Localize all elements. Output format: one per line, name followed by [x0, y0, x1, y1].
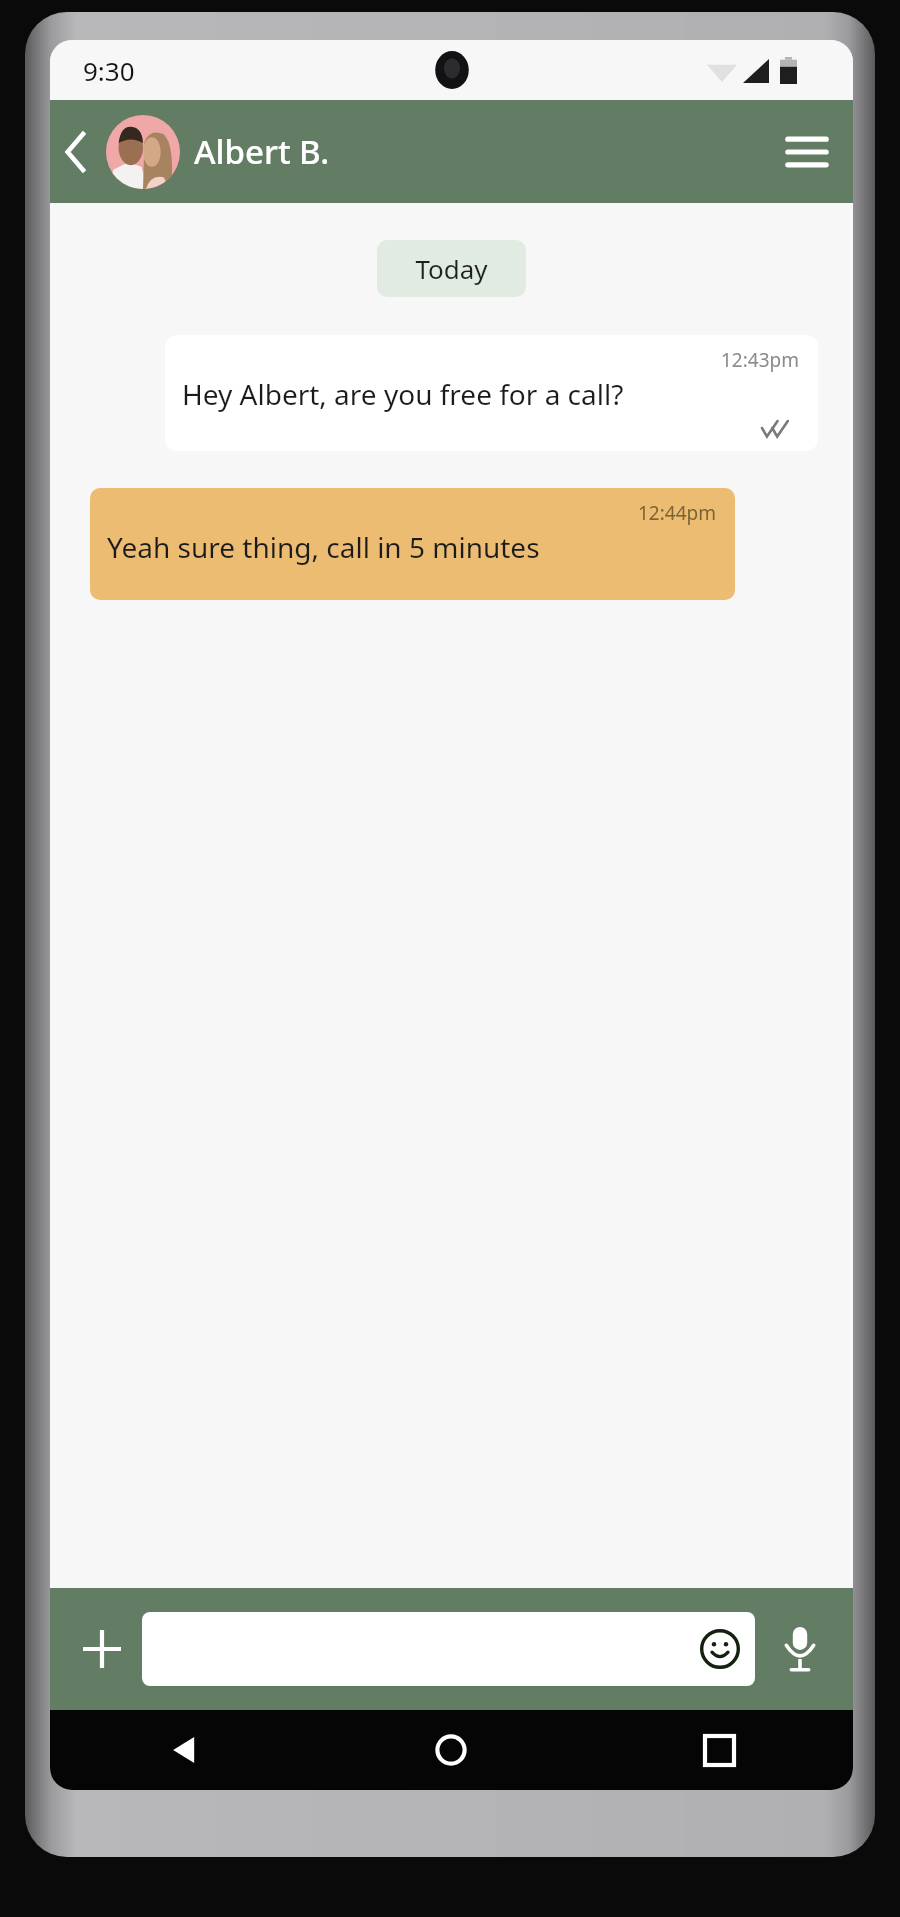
button[interactable]: Today: [377, 240, 526, 297]
button[interactable]: Home: [317, 1710, 585, 1790]
staticText: 9:30: [83, 53, 135, 88]
staticText: Hey Albert, are you free for a call?: [182, 375, 624, 413]
button[interactable]: 12:44pm: [90, 488, 735, 600]
staticText: 12:43pm: [721, 347, 800, 373]
button[interactable]: Emoji: [691, 1620, 749, 1678]
button[interactable]: Back: [50, 1710, 317, 1790]
button[interactable]: Voice message: [769, 1618, 831, 1680]
button[interactable]: Emoji: [142, 1612, 755, 1686]
staticText: Yeah sure thing, call in 5 minutes: [107, 528, 540, 566]
button[interactable]: Albert B.: [194, 129, 330, 174]
staticText: 12:44pm: [638, 500, 717, 526]
staticText: Today: [415, 251, 488, 286]
button[interactable]: Attach: [74, 1621, 130, 1677]
button[interactable]: Recent apps: [585, 1710, 853, 1790]
button[interactable]: Back: [50, 126, 102, 178]
button[interactable]: 12:43pm: [165, 335, 818, 451]
button[interactable]: Menu: [775, 120, 839, 184]
button[interactable]: Contact photo: [106, 115, 180, 189]
